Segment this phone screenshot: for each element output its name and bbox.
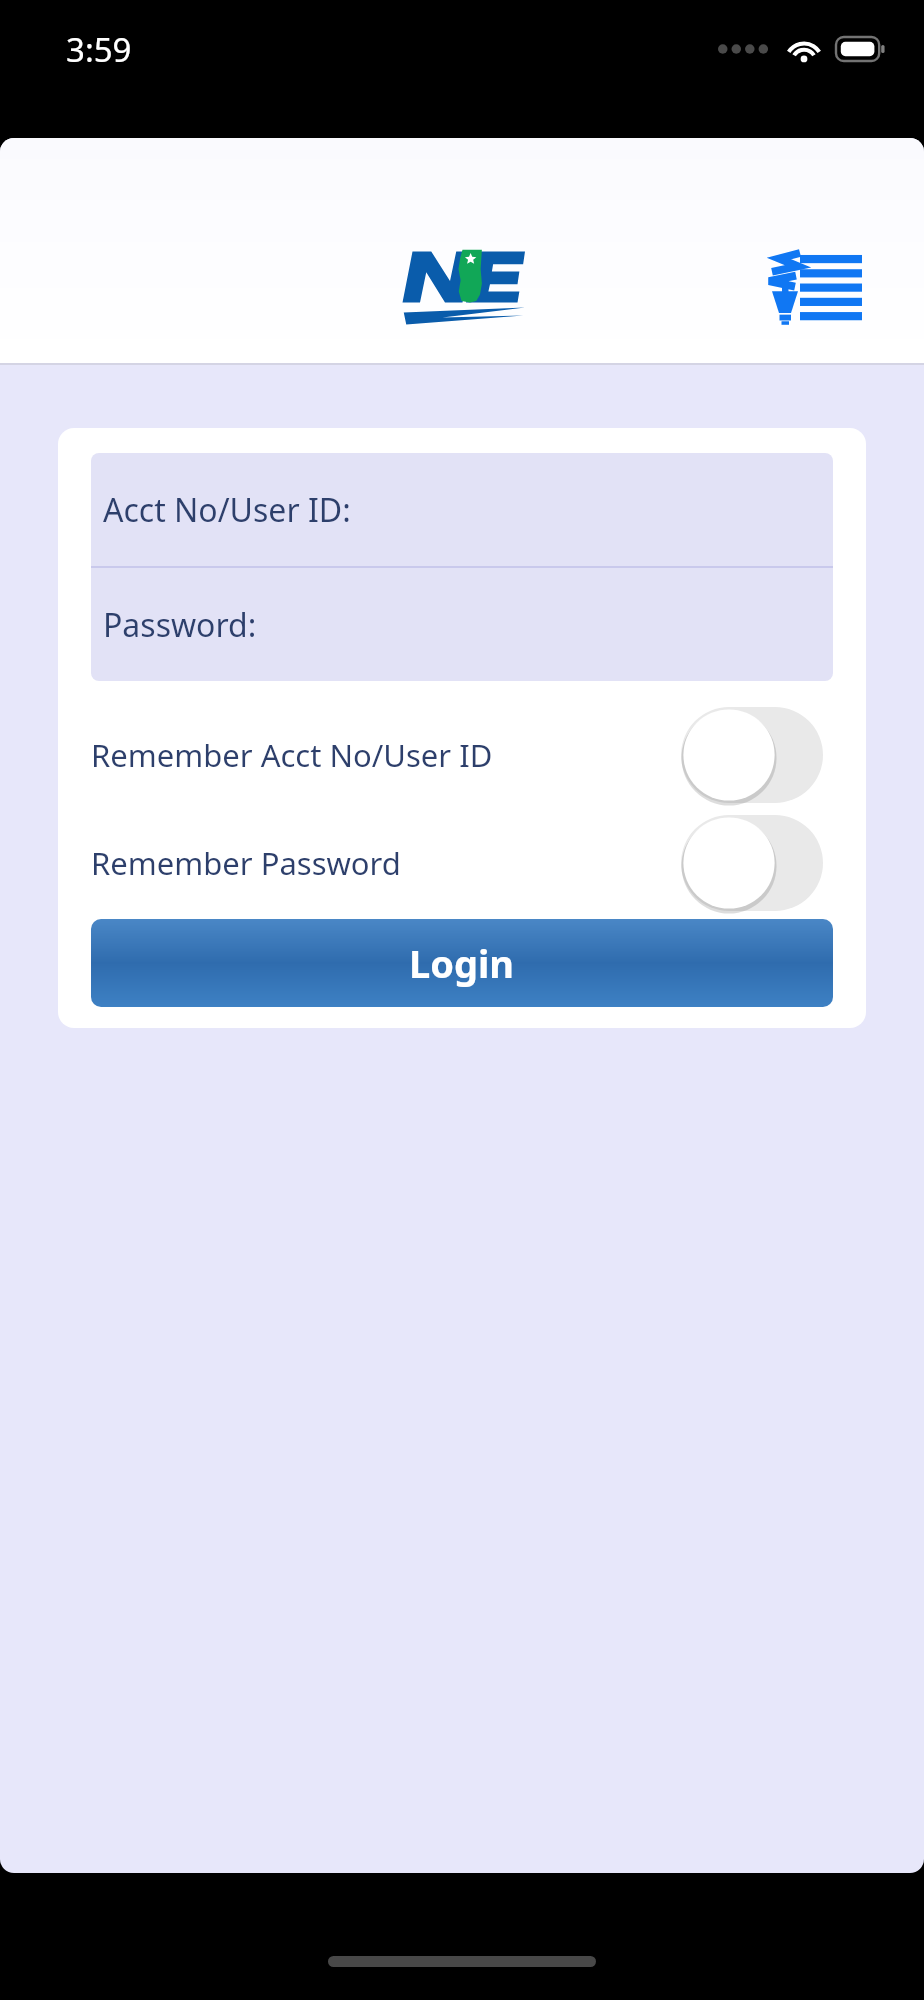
button[interactable]: Acct No/User ID:	[91, 453, 833, 566]
button[interactable]: Menu	[762, 246, 862, 324]
staticText: 3:59	[66, 27, 132, 72]
staticText: Remember Password	[91, 842, 681, 884]
button[interactable]: Remember Acct No/User ID	[91, 705, 833, 805]
staticText: Acct No/User ID:	[103, 488, 351, 532]
staticText: Login	[409, 937, 515, 989]
staticText: Password:	[103, 603, 257, 647]
button[interactable]: Remember Password	[91, 813, 833, 913]
staticText: Remember Acct No/User ID	[91, 734, 681, 776]
button[interactable]: Password:	[91, 568, 833, 681]
button[interactable]: Northeast Mississippi Electric logo	[400, 245, 525, 325]
button[interactable]: Login	[91, 919, 833, 1007]
